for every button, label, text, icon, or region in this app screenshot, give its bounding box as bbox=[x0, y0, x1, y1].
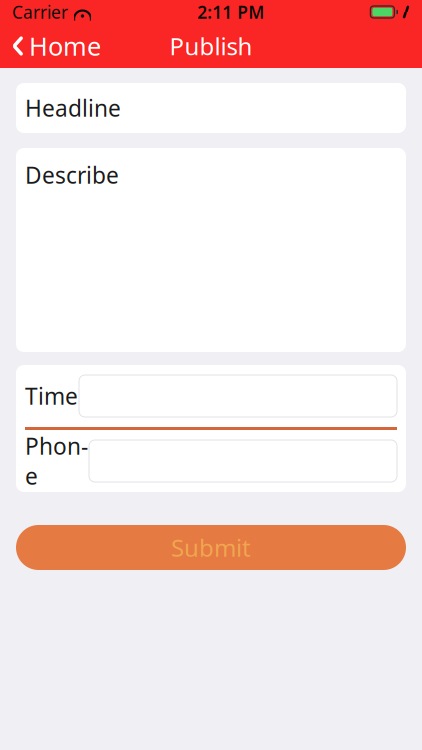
staticText: Phone bbox=[25, 431, 88, 491]
staticText: Carrier bbox=[12, 0, 68, 23]
staticText: Headline bbox=[25, 93, 121, 123]
staticText: Time bbox=[25, 381, 78, 411]
staticText: Submit bbox=[171, 532, 251, 563]
staticText: Describe bbox=[25, 160, 119, 190]
button[interactable]: Home bbox=[0, 24, 113, 68]
staticText: Publish bbox=[169, 30, 252, 62]
button[interactable]: Phone field bbox=[89, 440, 397, 482]
button[interactable]: Time field bbox=[79, 375, 397, 417]
button[interactable]: Submit bbox=[16, 525, 406, 570]
staticText: 2:11 PM bbox=[197, 0, 264, 23]
staticText: Home bbox=[29, 29, 101, 63]
